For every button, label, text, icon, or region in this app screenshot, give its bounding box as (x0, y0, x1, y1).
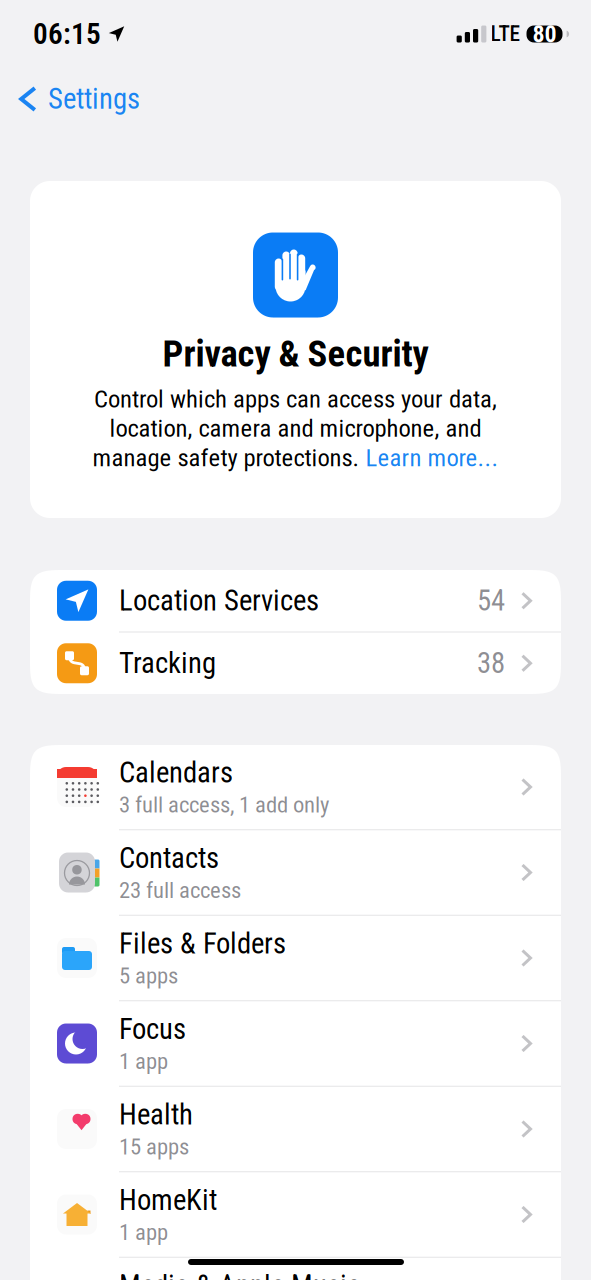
staticText: 1 app (119, 1048, 168, 1075)
staticText: 5 apps (119, 962, 178, 989)
button[interactable]: Contacts (30, 830, 561, 915)
button[interactable]: Calendars (30, 745, 561, 829)
staticText: Contacts (119, 841, 219, 875)
staticText: location, camera and microphone, and (109, 414, 481, 443)
button[interactable]: Media & Apple Music (30, 1258, 561, 1280)
staticText: 3 full access, 1 add only (119, 791, 329, 818)
staticText: 15 apps (119, 1133, 189, 1160)
staticText: Control which apps can access your data, (94, 385, 497, 414)
button[interactable]: Tracking (30, 632, 561, 694)
staticText: 23 full access (119, 877, 241, 904)
staticText: 06:15 (33, 17, 101, 51)
staticText: LTE (490, 21, 520, 46)
button[interactable]: Settings (0, 68, 154, 130)
staticText: 80 (532, 20, 556, 48)
staticText: HomeKit (119, 1183, 217, 1217)
staticText: Learn more... (365, 443, 498, 472)
button[interactable]: Files & Folders (30, 916, 561, 1000)
staticText: Settings (48, 82, 140, 116)
staticText: Media & Apple Music (119, 1269, 360, 1280)
staticText: 54 (477, 584, 505, 618)
button[interactable]: Health (30, 1087, 561, 1171)
button[interactable]: HomeKit (30, 1172, 561, 1257)
staticText: 38 (477, 646, 505, 680)
staticText: Health (119, 1098, 193, 1131)
staticText: Tracking (119, 646, 216, 680)
button[interactable]: Location Services (30, 570, 561, 631)
button[interactable]: Focus (30, 1001, 561, 1086)
staticText: Focus (119, 1012, 186, 1046)
staticText: 1 app (119, 1219, 168, 1246)
staticText: Privacy & Security (162, 332, 428, 375)
staticText: Calendars (119, 756, 233, 789)
staticText: Files & Folders (119, 927, 286, 960)
staticText: Location Services (119, 584, 319, 618)
staticText: manage safety protections. (92, 443, 365, 472)
